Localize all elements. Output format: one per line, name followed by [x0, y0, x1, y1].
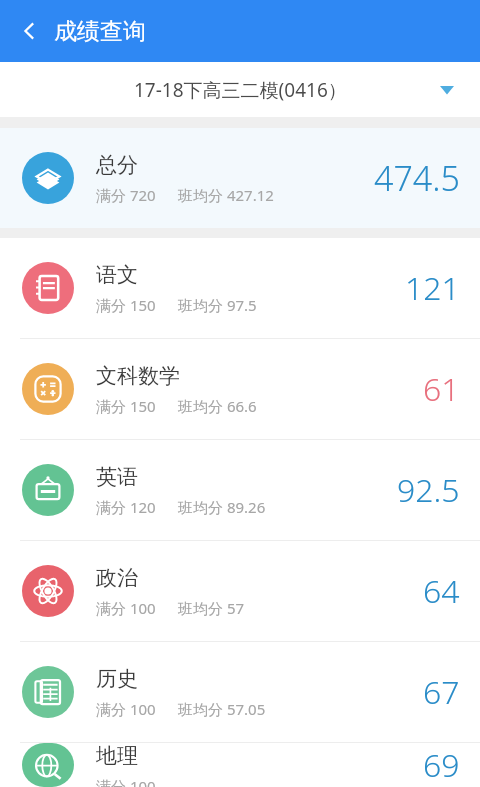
staticText: 语文 — [96, 262, 138, 288]
staticText: 总分 — [96, 152, 138, 178]
staticText: 文科数学 — [96, 363, 180, 389]
staticText: 61 — [423, 367, 460, 411]
button[interactable]: Back — [8, 9, 52, 53]
staticText: 班均分 57.05 — [178, 699, 266, 719]
button[interactable]: 语文 — [0, 238, 480, 338]
staticText: 满分 100 — [96, 776, 156, 787]
staticText: 17-18下高三二模(0416） — [134, 77, 347, 103]
staticText: 历史 — [96, 666, 138, 692]
staticText: 班均分 89.26 — [178, 497, 266, 517]
staticText: 92.5 — [397, 468, 460, 512]
staticText: 满分 120 — [96, 497, 156, 517]
staticText: 满分 150 — [96, 295, 156, 315]
button[interactable]: 政治 — [0, 541, 480, 641]
staticText: 满分 150 — [96, 396, 156, 416]
staticText: 69 — [423, 743, 460, 787]
staticText: 政治 — [96, 565, 138, 591]
button[interactable]: 英语 — [0, 440, 480, 540]
button[interactable]: 17-18下高三二模(0416） — [0, 62, 480, 117]
button[interactable]: 文科数学 — [0, 339, 480, 439]
staticText: 121 — [405, 266, 460, 310]
button[interactable]: 总分 — [0, 128, 480, 228]
staticText: 满分 720 — [96, 185, 156, 205]
staticText: 班均分 97.5 — [178, 295, 257, 315]
staticText: 英语 — [96, 464, 138, 490]
staticText: 67 — [423, 670, 460, 714]
staticText: 班均分 57 — [178, 598, 245, 618]
staticText: 64 — [423, 569, 460, 613]
staticText: 班均分 427.12 — [178, 185, 274, 205]
staticText: 满分 100 — [96, 598, 156, 618]
staticText: 474.5 — [374, 155, 460, 201]
staticText: 满分 100 — [96, 699, 156, 719]
staticText: 成绩查询 — [54, 17, 146, 46]
button[interactable]: 地理 — [0, 743, 480, 787]
staticText: 地理 — [96, 743, 138, 769]
button[interactable]: 历史 — [0, 642, 480, 742]
staticText: 班均分 66.6 — [178, 396, 257, 416]
